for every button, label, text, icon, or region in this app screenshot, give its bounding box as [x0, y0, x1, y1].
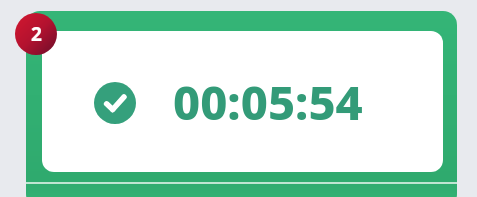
- button[interactable]: 2 notifications: [15, 13, 57, 55]
- staticText: 00:05:54: [173, 70, 363, 132]
- staticText: 2: [31, 21, 42, 47]
- button[interactable]: Completed: [42, 31, 443, 172]
- button[interactable]: [26, 11, 457, 197]
- button[interactable]: Completed: [94, 82, 136, 124]
